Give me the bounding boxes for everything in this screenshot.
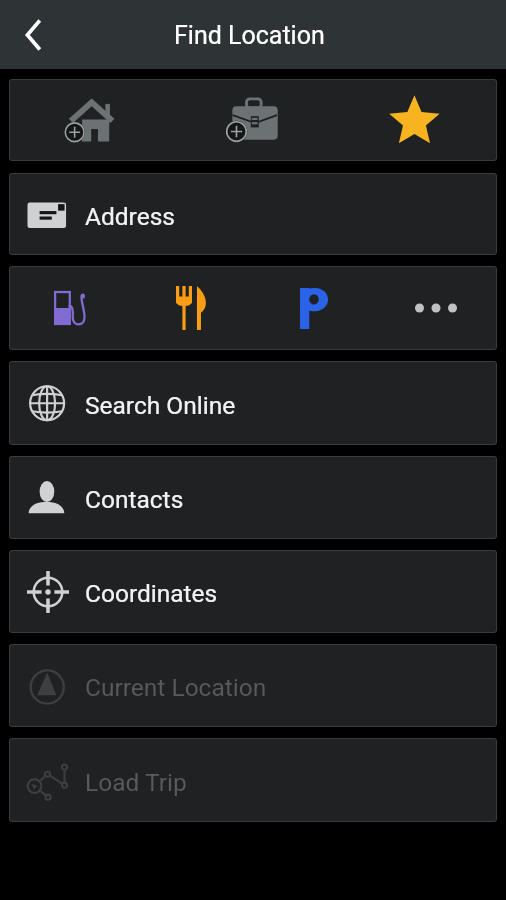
button[interactable]: More: [375, 266, 497, 350]
staticText: Search Online: [85, 391, 236, 420]
button[interactable]: Add Work: [171, 79, 334, 161]
staticText: Address: [85, 202, 175, 231]
button[interactable]: Address: [9, 173, 497, 255]
button[interactable]: Current Location: [9, 644, 497, 727]
button[interactable]: Parking: [253, 266, 375, 350]
button[interactable]: Fuel: [9, 266, 131, 350]
button[interactable]: Back: [0, 0, 66, 69]
button[interactable]: Add Home: [9, 79, 171, 161]
staticText: Load Trip: [85, 768, 187, 797]
button[interactable]: Favourites: [334, 79, 497, 161]
staticText: Current Location: [85, 673, 267, 702]
button[interactable]: Restaurants: [131, 266, 253, 350]
button[interactable]: Coordinates: [9, 550, 497, 633]
staticText: Coordinates: [85, 579, 218, 608]
button[interactable]: Contacts: [9, 456, 497, 539]
button[interactable]: Load Trip: [9, 738, 497, 822]
staticText: Contacts: [85, 485, 184, 514]
button[interactable]: Search Online: [9, 361, 497, 445]
staticText: Find Location: [174, 21, 325, 50]
